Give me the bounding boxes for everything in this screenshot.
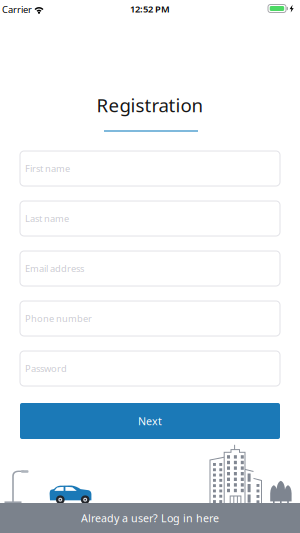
staticText: Phone number — [25, 312, 92, 325]
button[interactable]: Email address — [20, 251, 280, 286]
button[interactable]: Password — [20, 351, 280, 386]
staticText: Registration — [96, 93, 203, 117]
staticText: Next — [138, 414, 162, 428]
staticText: Password — [25, 362, 67, 375]
staticText: Last name — [25, 212, 69, 225]
staticText: Email address — [25, 262, 84, 275]
button[interactable]: First name — [20, 151, 280, 186]
button[interactable]: Next — [20, 403, 280, 439]
button[interactable]: Already a user? Log in here — [0, 503, 300, 533]
staticText: Carrier — [2, 3, 32, 16]
staticText: 12:52 PM — [130, 3, 170, 15]
staticText: Already a user? Log in here — [81, 511, 219, 525]
button[interactable]: Last name — [20, 201, 280, 236]
button[interactable]: Phone number — [20, 301, 280, 336]
staticText: First name — [25, 162, 70, 175]
